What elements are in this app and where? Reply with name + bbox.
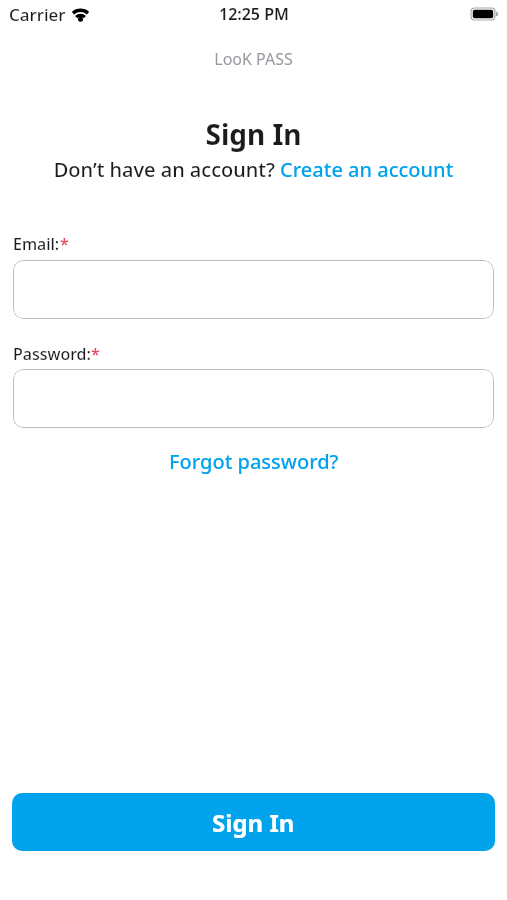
staticText: Carrier — [9, 3, 66, 26]
button[interactable]: Forgot password? — [169, 448, 339, 475]
staticText: Sign In — [212, 806, 295, 839]
staticText: LooK PASS — [0, 48, 507, 70]
staticText: 12:25 PM — [219, 3, 289, 25]
button[interactable]: Don’t have an account? Create an account — [0, 156, 507, 183]
staticText: Password: — [13, 343, 91, 365]
staticText: Forgot password? — [169, 448, 339, 475]
button[interactable]: Sign In — [12, 793, 495, 851]
staticText: Sign In — [0, 115, 507, 153]
staticText: Email: — [13, 233, 60, 255]
staticText: * — [60, 233, 69, 255]
button[interactable] — [13, 260, 494, 319]
staticText: * — [91, 343, 100, 365]
button[interactable] — [13, 369, 494, 428]
